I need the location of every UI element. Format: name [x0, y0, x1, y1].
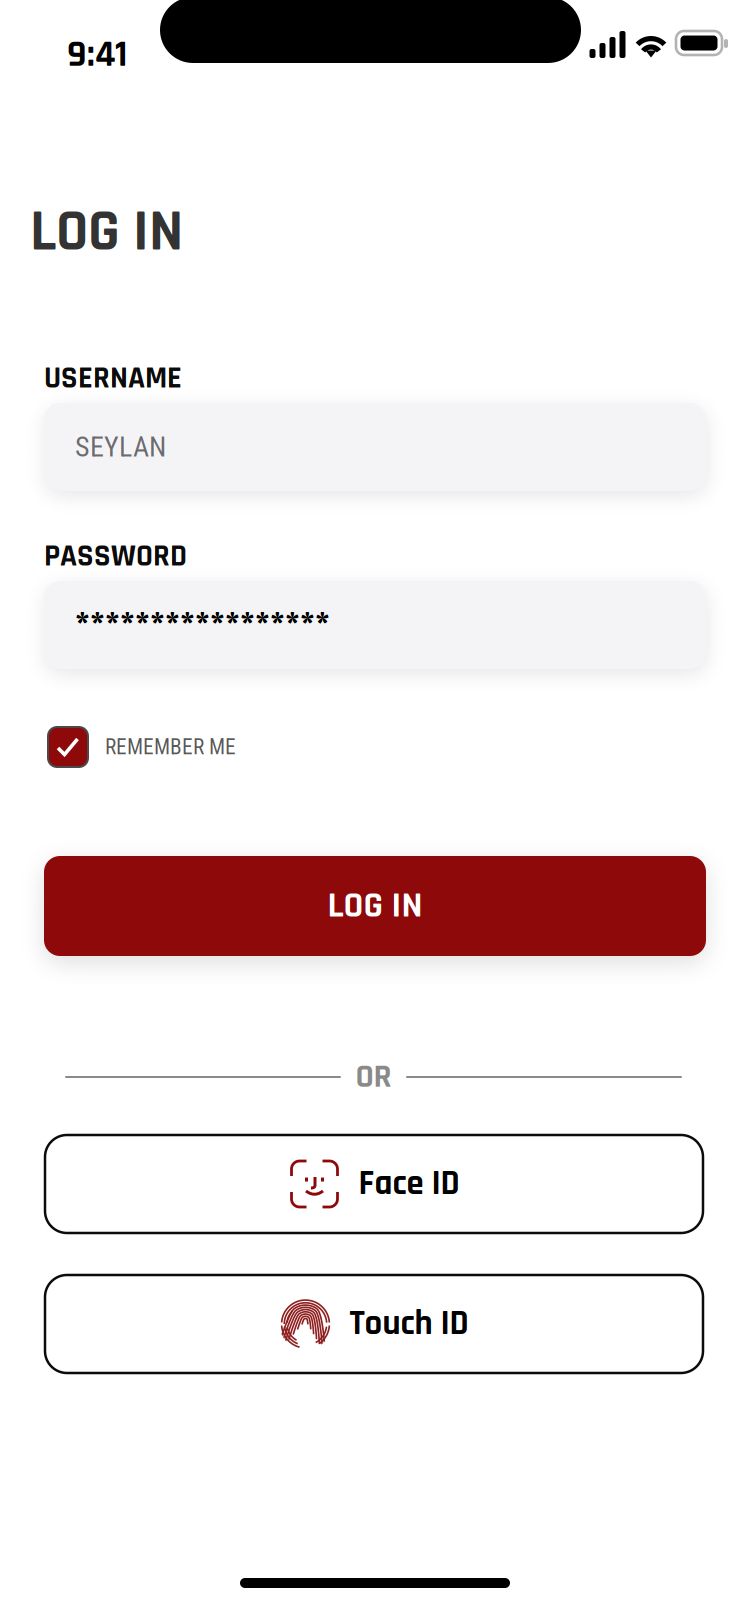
button[interactable]: Face ID: [45, 1135, 703, 1233]
staticText: USERNAME: [44, 359, 182, 398]
staticText: LOG IN: [327, 883, 422, 929]
staticText: *****************: [75, 601, 330, 649]
staticText: SEYLAN: [75, 431, 166, 463]
staticText: Touch ID: [349, 1302, 468, 1346]
staticText: PASSWORD: [44, 537, 187, 576]
staticText: REMEMBER ME: [105, 734, 236, 759]
staticText: LOG IN: [30, 195, 183, 270]
button[interactable]: Touch ID: [45, 1275, 703, 1373]
button[interactable]: REMEMBER ME: [48, 727, 236, 767]
button[interactable]: LOG IN: [44, 856, 706, 956]
staticText: 9:41: [67, 31, 127, 79]
staticText: OR: [355, 1056, 391, 1098]
staticText: Face ID: [358, 1162, 459, 1206]
